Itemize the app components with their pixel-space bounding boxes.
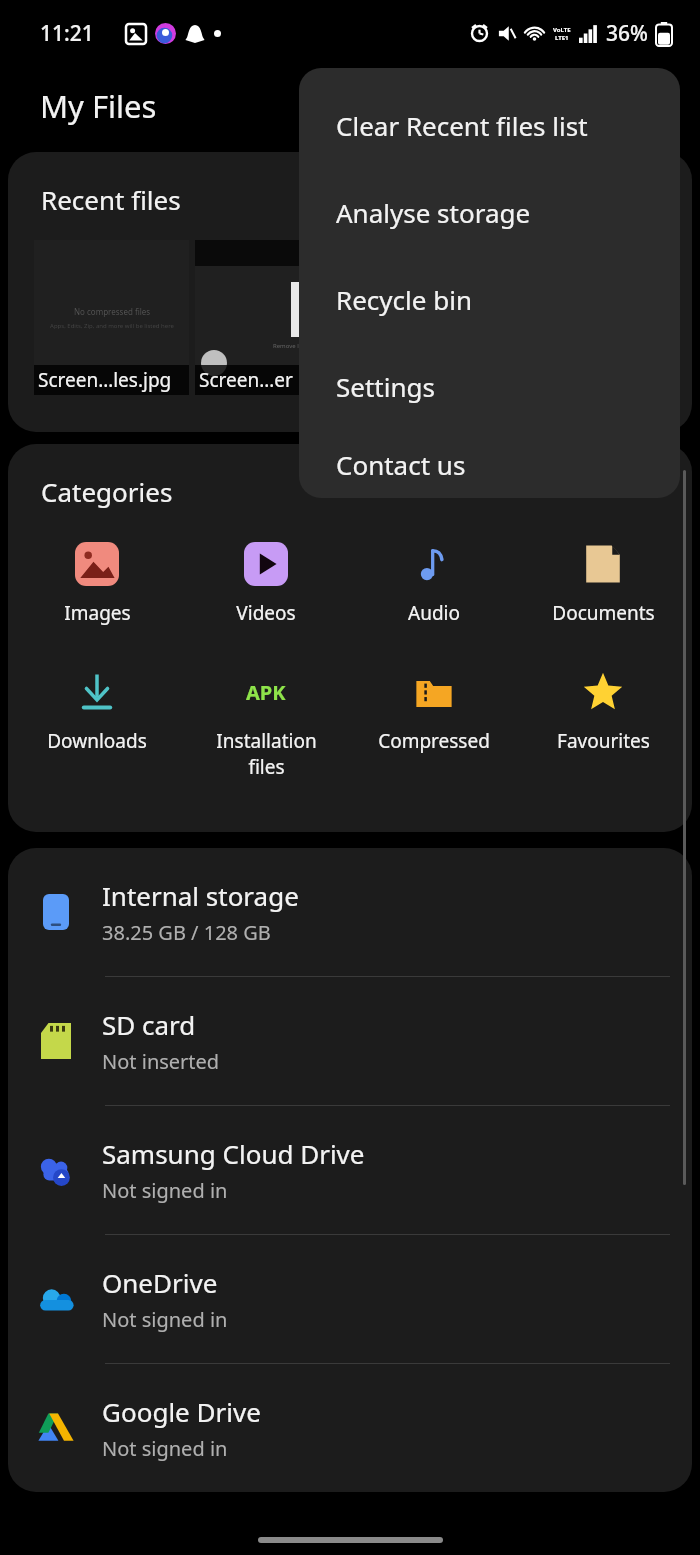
- button[interactable]: Documents: [524, 534, 682, 630]
- staticText: Not inserted: [102, 1048, 220, 1075]
- staticText: Settings: [336, 369, 435, 404]
- staticText: Images: [64, 600, 131, 626]
- staticText: Videos: [236, 600, 296, 626]
- staticText: OneDrive: [102, 1265, 218, 1300]
- staticText: Downloads: [47, 728, 147, 754]
- staticText: Recent files: [41, 182, 181, 217]
- staticText: Clear Recent files list: [336, 108, 588, 143]
- staticText: Google Drive: [102, 1394, 261, 1429]
- staticText: Recycle bin: [336, 282, 472, 317]
- staticText: VoLTE: [553, 26, 571, 34]
- staticText: Not signed in: [102, 1306, 228, 1333]
- staticText: No compressed files: [74, 306, 151, 317]
- staticText: Screen…er: [199, 367, 293, 393]
- staticText: SD card: [102, 1007, 196, 1042]
- button[interactable]: Downloads: [18, 662, 176, 758]
- button[interactable]: OneDrive: [8, 1235, 692, 1364]
- staticText: APK: [246, 679, 286, 706]
- staticText: Favourites: [557, 728, 650, 754]
- staticText: My Files: [40, 85, 157, 127]
- staticText: Samsung Cloud Drive: [102, 1136, 365, 1171]
- button[interactable]: SD card: [8, 977, 692, 1106]
- button[interactable]: Images: [18, 534, 176, 630]
- button[interactable]: No compressed files: [34, 240, 189, 395]
- button[interactable]: Audio: [355, 534, 513, 630]
- staticText: Contact us: [336, 447, 466, 482]
- staticText: Not signed in: [102, 1177, 228, 1204]
- button[interactable]: Recycle bin: [299, 256, 680, 343]
- button[interactable]: Contact us: [299, 430, 680, 498]
- staticText: 36%: [606, 19, 648, 48]
- staticText: Installation files: [216, 728, 317, 780]
- staticText: 11:21: [40, 19, 94, 48]
- staticText: Apps, Edits, Zip, and more will be liste…: [50, 322, 174, 330]
- staticText: Documents: [552, 600, 655, 626]
- button[interactable]: Remove location i: [195, 240, 350, 395]
- button[interactable]: Clear Recent files list: [299, 82, 680, 169]
- staticText: Not signed in: [102, 1435, 228, 1462]
- staticText: Compressed: [378, 728, 490, 754]
- button[interactable]: Internal storage: [8, 848, 692, 977]
- staticText: Screen…les.jpg: [38, 367, 172, 393]
- button[interactable]: Google Drive: [8, 1364, 692, 1492]
- button[interactable]: Settings: [299, 343, 680, 430]
- button[interactable]: APK: [187, 662, 345, 784]
- button[interactable]: Favourites: [524, 662, 682, 758]
- staticText: Internal storage: [102, 878, 299, 913]
- staticText: LTE1: [555, 34, 569, 42]
- staticText: Analyse storage: [336, 195, 531, 230]
- staticText: Categories: [41, 474, 173, 509]
- staticText: Audio: [408, 600, 460, 626]
- button[interactable]: Videos: [187, 534, 345, 630]
- staticText: 38.25 GB / 128 GB: [102, 919, 271, 946]
- button[interactable]: Compressed: [355, 662, 513, 758]
- button[interactable]: Analyse storage: [299, 169, 680, 256]
- staticText: Remove location i: [273, 342, 323, 350]
- button[interactable]: Samsung Cloud Drive: [8, 1106, 692, 1235]
